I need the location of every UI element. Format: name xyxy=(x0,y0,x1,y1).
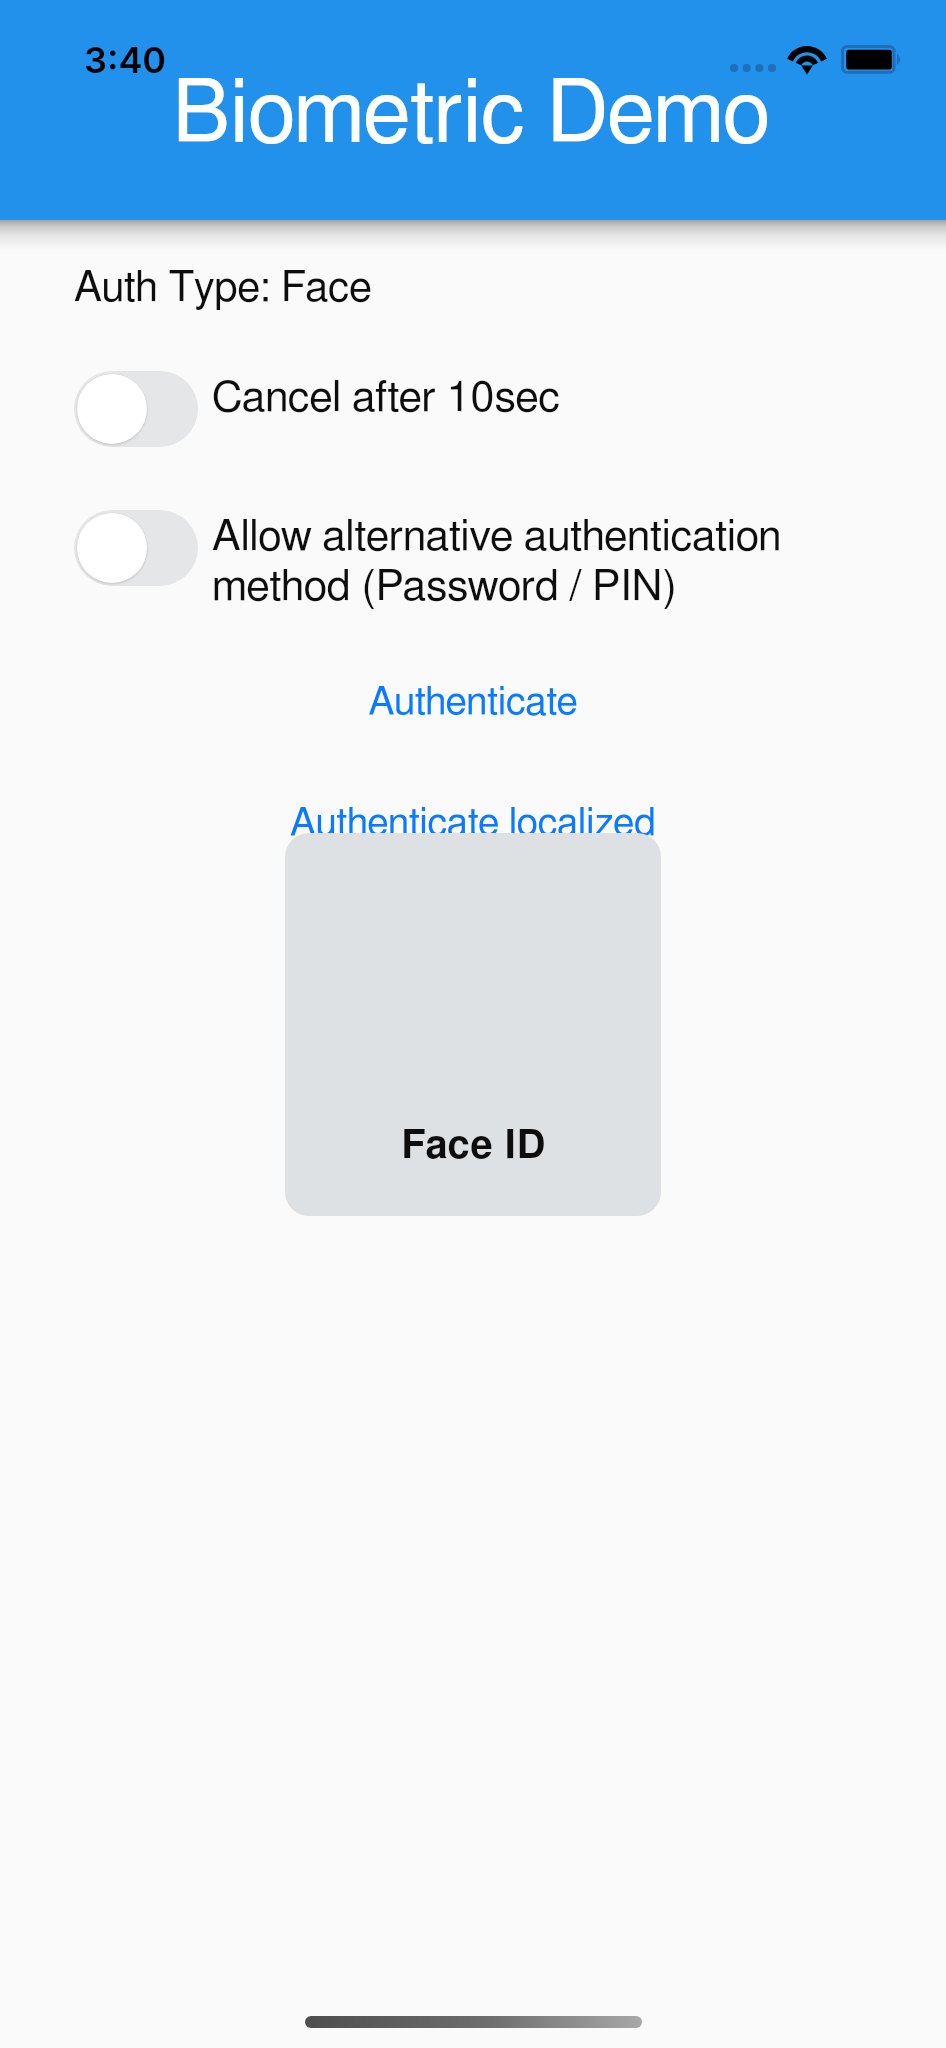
other: Signal, Wi-Fi and battery status xyxy=(730,42,910,76)
button[interactable]: Cancel after 10sec xyxy=(74,371,198,447)
button[interactable]: Authenticate localized xyxy=(0,796,946,850)
staticText: Authenticate localized xyxy=(290,804,656,843)
staticText: Cancel after 10sec xyxy=(212,377,852,420)
staticText: Biometric Demo xyxy=(172,72,770,159)
button[interactable]: Face ID xyxy=(285,833,661,1216)
button[interactable]: Allow alternative authentication method … xyxy=(74,510,198,586)
button[interactable]: Authenticate xyxy=(0,675,946,729)
staticText: Allow alternative authentication method … xyxy=(212,516,852,608)
staticText: Face ID xyxy=(401,1126,546,1166)
other: Home indicator xyxy=(305,2016,642,2028)
staticText: Authenticate xyxy=(368,683,578,722)
staticText: 3:40 xyxy=(84,38,167,82)
staticText: Auth Type: Face xyxy=(74,267,372,309)
